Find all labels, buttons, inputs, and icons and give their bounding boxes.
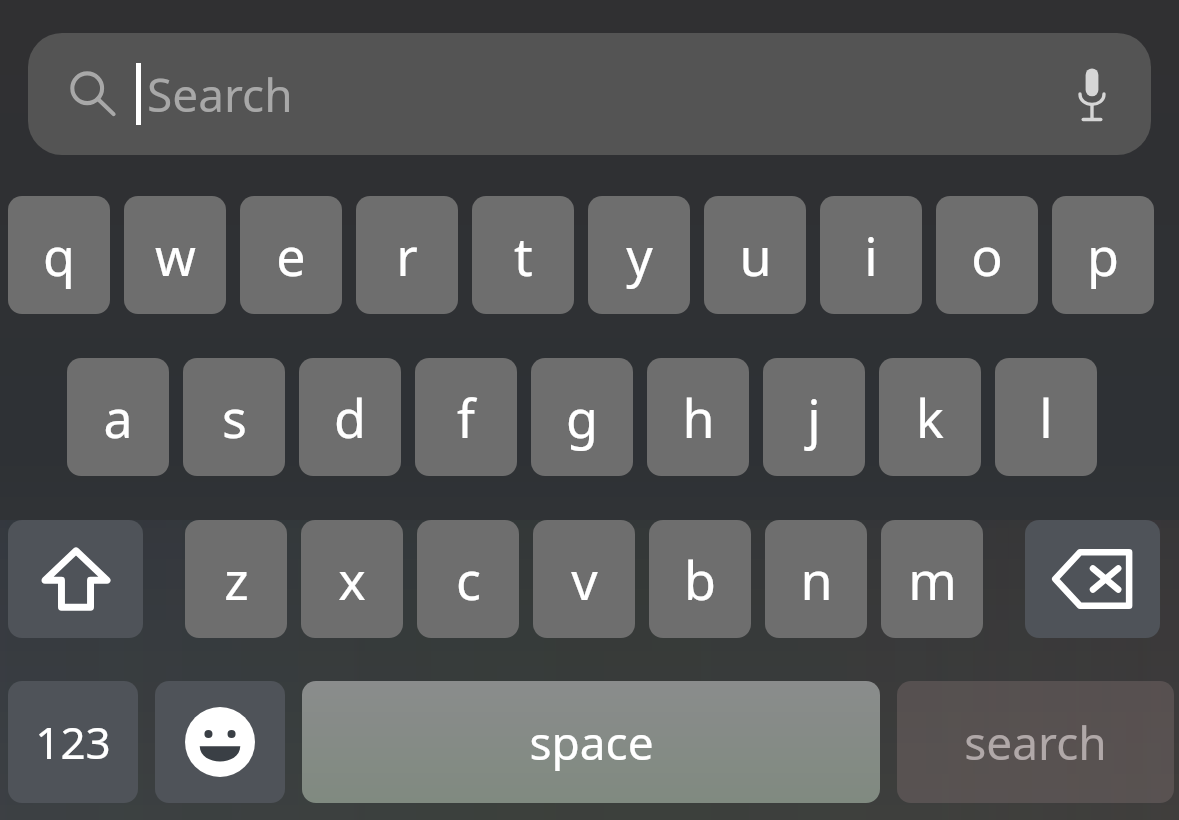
button[interactable]: 123 xyxy=(8,681,138,803)
staticText: q xyxy=(43,220,75,291)
button[interactable]: Emoji xyxy=(155,681,285,803)
staticText: t xyxy=(514,220,533,291)
button[interactable]: a xyxy=(67,358,169,476)
staticText: a xyxy=(103,382,133,453)
button[interactable]: c xyxy=(417,520,519,638)
staticText: o xyxy=(971,220,1003,291)
button[interactable]: s xyxy=(183,358,285,476)
button[interactable]: space xyxy=(302,681,880,803)
staticText: c xyxy=(456,544,481,615)
button[interactable]: Backspace xyxy=(1025,520,1160,638)
button[interactable]: k xyxy=(879,358,981,476)
button[interactable]: i xyxy=(820,196,922,314)
staticText: d xyxy=(334,382,366,453)
staticText: space xyxy=(529,711,654,774)
staticText: r xyxy=(396,220,418,291)
button[interactable]: g xyxy=(531,358,633,476)
staticText: h xyxy=(682,382,715,453)
staticText: y xyxy=(626,220,653,291)
button[interactable]: t xyxy=(472,196,574,314)
staticText: Search xyxy=(147,63,293,126)
button[interactable]: b xyxy=(649,520,751,638)
staticText: s xyxy=(222,382,247,453)
button[interactable]: v xyxy=(533,520,635,638)
button[interactable]: o xyxy=(936,196,1038,314)
staticText: k xyxy=(916,382,944,453)
staticText: 123 xyxy=(35,712,111,772)
button[interactable]: z xyxy=(185,520,287,638)
staticText: g xyxy=(566,382,598,453)
staticText: l xyxy=(1039,382,1053,453)
button[interactable]: w xyxy=(124,196,226,314)
button[interactable]: r xyxy=(356,196,458,314)
button[interactable]: search xyxy=(897,681,1174,803)
staticText: e xyxy=(276,220,306,291)
staticText: i xyxy=(864,220,878,291)
button[interactable]: m xyxy=(881,520,983,638)
button[interactable]: h xyxy=(647,358,749,476)
button[interactable]: p xyxy=(1052,196,1154,314)
button[interactable]: Voice search xyxy=(1055,57,1129,131)
staticText: p xyxy=(1087,220,1119,291)
staticText: n xyxy=(800,544,833,615)
staticText: w xyxy=(155,220,196,291)
button[interactable]: f xyxy=(415,358,517,476)
staticText: z xyxy=(224,544,249,615)
staticText: v xyxy=(571,544,598,615)
button[interactable]: l xyxy=(995,358,1097,476)
button[interactable]: x xyxy=(301,520,403,638)
button[interactable]: Search xyxy=(28,33,1151,155)
button[interactable]: u xyxy=(704,196,806,314)
button[interactable]: e xyxy=(240,196,342,314)
button[interactable]: q xyxy=(8,196,110,314)
button[interactable]: y xyxy=(588,196,690,314)
staticText: x xyxy=(338,544,366,615)
button[interactable]: n xyxy=(765,520,867,638)
staticText: search xyxy=(964,711,1107,774)
button[interactable]: d xyxy=(299,358,401,476)
staticText: b xyxy=(684,544,716,615)
button[interactable]: Shift xyxy=(8,520,143,638)
staticText: f xyxy=(457,382,475,453)
staticText: u xyxy=(739,220,772,291)
button[interactable]: j xyxy=(763,358,865,476)
staticText: m xyxy=(908,544,957,615)
staticText: j xyxy=(807,382,821,453)
